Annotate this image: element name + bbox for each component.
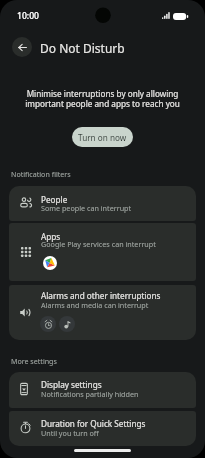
button[interactable]: Display settings	[9, 372, 196, 408]
staticText: Until you turn off	[41, 428, 99, 438]
button[interactable]: Duration for Quick Settings	[9, 411, 196, 446]
button[interactable]: People	[9, 186, 196, 221]
staticText: Alarms and media can interrupt	[41, 300, 149, 310]
staticText: Apps	[41, 231, 61, 242]
staticText: Google Play services can interrupt	[41, 239, 156, 249]
button[interactable]: Apps	[9, 223, 196, 281]
button[interactable]: Back	[12, 37, 32, 57]
staticText: Some people can interrupt	[41, 203, 132, 213]
button[interactable]: Turn on now	[72, 127, 133, 147]
staticText: 10:00	[17, 10, 40, 22]
staticText: Display settings	[41, 379, 102, 390]
staticText: Do Not Disturb	[40, 40, 125, 56]
staticText: Alarms and other interruptions	[41, 290, 161, 301]
button[interactable]: Alarms and other interruptions	[9, 285, 196, 340]
staticText: More settings	[11, 356, 57, 366]
staticText: Turn on now	[78, 132, 127, 143]
staticText: Notification filters	[11, 169, 71, 179]
staticText: Duration for Quick Settings	[41, 418, 146, 429]
staticText: Notifications partially hidden	[41, 389, 139, 399]
staticText: People	[41, 194, 68, 205]
staticText: Minimise interruptions by only allowing …	[14, 88, 191, 110]
